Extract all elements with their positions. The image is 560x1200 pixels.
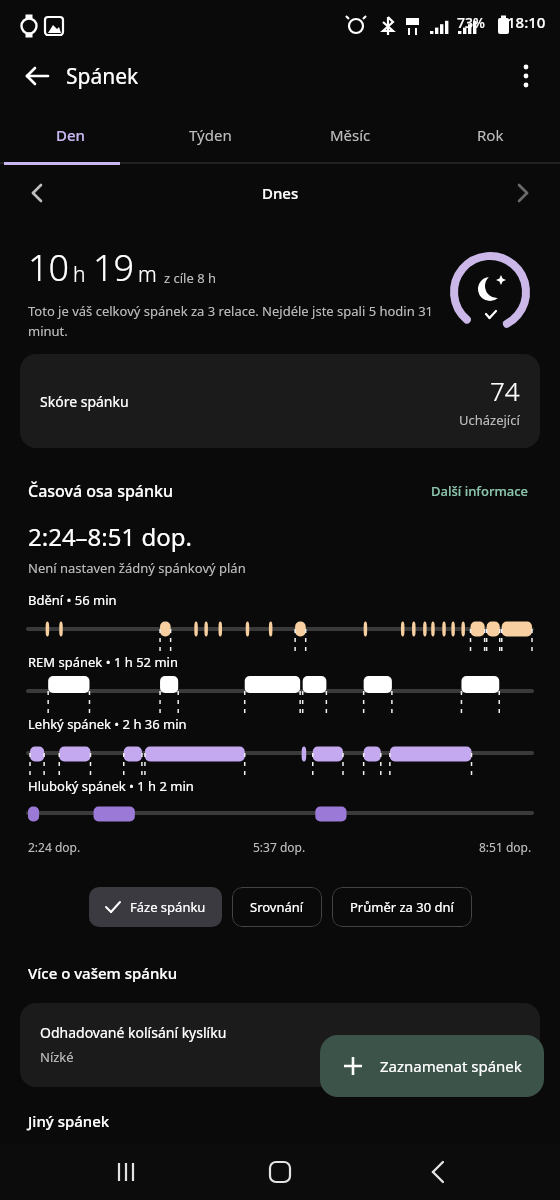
staticText: Lehký spánek • 2 h 36 min bbox=[28, 715, 187, 733]
button[interactable]: Rok bbox=[420, 108, 560, 162]
button[interactable]: Den bbox=[0, 108, 140, 162]
button[interactable]: Měsíc bbox=[280, 108, 420, 162]
staticText: Průměr za 30 dní bbox=[350, 898, 454, 916]
staticText: Fáze spánku bbox=[130, 898, 206, 916]
staticText: Dnes bbox=[262, 183, 299, 203]
button[interactable]: Odhadované kolísání kyslíku bbox=[20, 1003, 540, 1087]
staticText: Skóre spánku bbox=[40, 392, 129, 411]
staticText: Časová osa spánku bbox=[28, 480, 174, 502]
staticText: Ucházející bbox=[459, 411, 520, 429]
staticText: Zaznamenat spánek bbox=[380, 1056, 522, 1076]
staticText: 18:10 bbox=[507, 12, 546, 32]
staticText: Měsíc bbox=[330, 125, 371, 145]
button[interactable]: Zaznamenat spánek bbox=[320, 1035, 544, 1097]
staticText: Není nastaven žádný spánkový plán bbox=[28, 559, 246, 577]
staticText: Spánek bbox=[66, 62, 139, 91]
button[interactable]: Back bbox=[373, 1144, 560, 1200]
staticText: 2:24–8:51 dop. bbox=[28, 520, 192, 553]
button[interactable]: Průměr za 30 dní bbox=[332, 887, 472, 927]
staticText: REM spánek • 1 h 52 min bbox=[28, 653, 178, 671]
staticText: h bbox=[73, 260, 86, 289]
button[interactable]: Týden bbox=[140, 108, 280, 162]
staticText: m bbox=[138, 260, 157, 289]
staticText: 74 bbox=[490, 373, 520, 408]
staticText: z cíle 8 h bbox=[164, 269, 217, 287]
staticText: Týden bbox=[189, 125, 232, 145]
staticText: 8:51 dop. bbox=[479, 839, 532, 855]
staticText: 73% bbox=[457, 13, 485, 32]
button[interactable]: Skóre spánku bbox=[20, 354, 540, 448]
button[interactable]: Next day bbox=[502, 172, 544, 214]
staticText: 10 bbox=[28, 243, 70, 292]
staticText: Další informace bbox=[431, 482, 528, 500]
staticText: Bdění • 56 min bbox=[28, 591, 117, 609]
button[interactable]: Back bbox=[14, 54, 58, 98]
staticText: Den bbox=[56, 125, 85, 145]
button[interactable]: Recents bbox=[0, 1144, 186, 1200]
button[interactable]: Previous day bbox=[16, 172, 58, 214]
staticText: 2:24 dop. bbox=[28, 839, 81, 855]
button[interactable]: More options bbox=[504, 54, 548, 98]
staticText: 5:37 dop. bbox=[253, 839, 306, 855]
button[interactable]: Další informace bbox=[427, 478, 532, 504]
staticText: Nízké bbox=[40, 1048, 74, 1066]
staticText: Rok bbox=[477, 125, 504, 145]
staticText: Hluboký spánek • 1 h 2 min bbox=[28, 777, 194, 795]
button[interactable]: Srovnání bbox=[232, 887, 322, 927]
staticText: 19 bbox=[93, 243, 135, 292]
staticText: Srovnání bbox=[250, 898, 304, 916]
button[interactable]: Home bbox=[186, 1144, 373, 1200]
staticText: Odhadované kolísání kyslíku bbox=[40, 1023, 227, 1042]
staticText: Toto je váš celkový spánek za 3 relace. … bbox=[28, 302, 438, 340]
staticText: Jiný spánek bbox=[28, 1111, 110, 1131]
staticText: Více o vašem spánku bbox=[28, 963, 178, 983]
button[interactable]: Fáze spánku bbox=[89, 887, 222, 927]
